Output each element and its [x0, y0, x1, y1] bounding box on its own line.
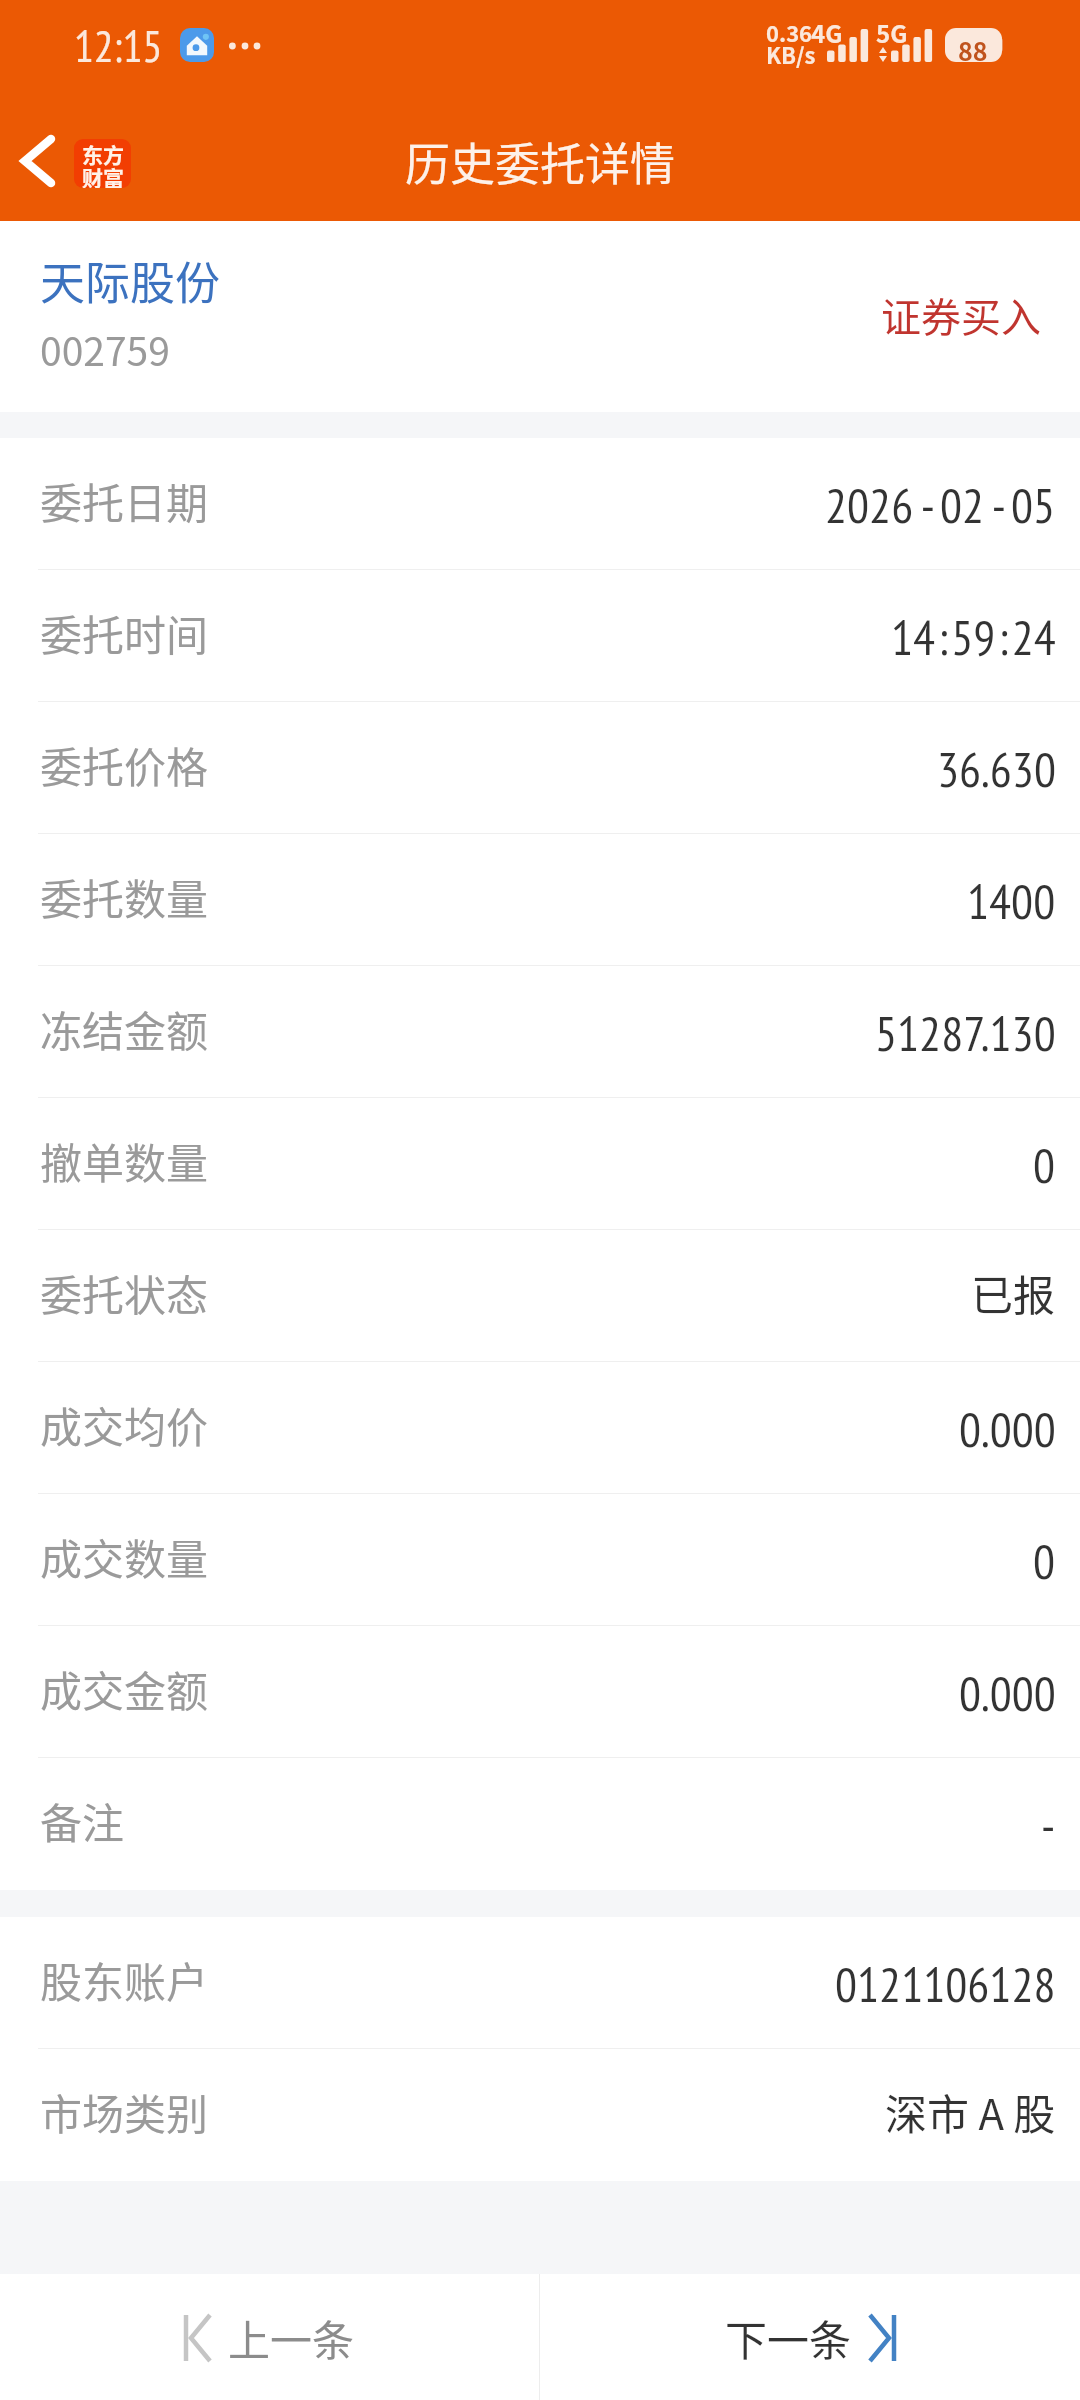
button[interactable]: 委托数量	[0, 834, 1080, 966]
staticText: 股东账户	[40, 1949, 209, 2010]
button[interactable]: 委托日期	[0, 438, 1080, 570]
staticText: 证券买入	[881, 286, 1041, 344]
staticText: 0121106128	[835, 1952, 1056, 2015]
staticText: 委托数量	[40, 866, 209, 927]
staticText: 成交数量	[40, 1526, 209, 1587]
staticText: 委托状态	[40, 1262, 209, 1323]
staticText: 委托日期	[40, 470, 209, 531]
button[interactable]: Back	[0, 106, 76, 216]
staticText: 已报	[971, 1262, 1056, 1323]
button[interactable]: 成交均价	[0, 1362, 1080, 1494]
button[interactable]: 成交数量	[0, 1494, 1080, 1626]
staticText: 天际股份	[40, 248, 221, 313]
button[interactable]: 委托价格	[0, 702, 1080, 834]
button[interactable]: 委托时间	[0, 570, 1080, 702]
staticText: 下一条	[725, 2307, 852, 2368]
staticText: 0.36 KB/s	[766, 16, 816, 70]
button[interactable]: East Money logo	[74, 139, 131, 188]
staticText: 1400	[967, 869, 1056, 932]
staticText: 撤单数量	[40, 1130, 209, 1191]
staticText: 成交金额	[40, 1658, 209, 1719]
button[interactable]: 市场类别	[0, 2049, 1080, 2181]
staticText: 0.000	[959, 1397, 1056, 1460]
staticText: 12:15	[74, 17, 163, 74]
staticText: 冻结金额	[40, 998, 209, 1059]
button[interactable]: 下一条	[540, 2274, 1080, 2400]
staticText: 东方 财富	[82, 139, 124, 188]
button[interactable]: 冻结金额	[0, 966, 1080, 1098]
staticText: 委托价格	[40, 734, 209, 795]
staticText: 14 : 59 : 24	[891, 605, 1056, 668]
button[interactable]: 撤单数量	[0, 1098, 1080, 1230]
button[interactable]: 备注	[0, 1758, 1080, 1890]
staticText: 0	[1033, 1133, 1056, 1196]
staticText: 深市 A 股	[885, 2081, 1056, 2142]
staticText: 市场类别	[40, 2081, 209, 2142]
staticText: 历史委托详情	[405, 129, 676, 194]
staticText: 0.000	[959, 1661, 1056, 1724]
staticText: 备注	[40, 1790, 125, 1851]
staticText: 成交均价	[40, 1394, 209, 1455]
staticText: 上一条	[228, 2307, 355, 2368]
staticText: 委托时间	[40, 602, 209, 663]
staticText: 36.630	[937, 737, 1056, 800]
staticText: 002759	[40, 321, 170, 377]
button[interactable]: 成交金额	[0, 1626, 1080, 1758]
staticText: 0	[1033, 1529, 1056, 1592]
staticText: -	[1041, 1793, 1056, 1856]
button[interactable]: 股东账户	[0, 1917, 1080, 2049]
staticText: 88	[958, 32, 988, 68]
staticText: 2026 - 02 - 05	[825, 473, 1056, 536]
button[interactable]: 委托状态	[0, 1230, 1080, 1362]
staticText: 5G	[876, 15, 908, 50]
staticText: 4G	[811, 15, 843, 50]
staticText: 51287.130	[875, 1001, 1056, 1064]
button[interactable]: 上一条	[0, 2274, 539, 2400]
